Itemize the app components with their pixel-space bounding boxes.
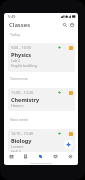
button[interactable]: Search — [62, 22, 68, 28]
staticText: Physics — [11, 51, 32, 58]
staticText: Hall 3 — [11, 149, 21, 152]
button[interactable]: Classes — [33, 152, 48, 161]
button[interactable]: Profile — [69, 22, 75, 28]
staticText: Honors — [11, 103, 24, 108]
staticText: 9:00 – 10:30 — [11, 45, 31, 50]
staticText: Today — [10, 32, 21, 37]
button[interactable]: Profile — [63, 152, 78, 161]
staticText: Classes — [9, 21, 31, 29]
staticText: Engels building — [11, 63, 37, 68]
staticText: Tomorrow — [10, 76, 28, 81]
button[interactable]: 14:10 – 15:40 — [8, 129, 75, 152]
staticText: Biology — [11, 137, 32, 144]
staticText: 11:00 – 12:20 — [11, 90, 34, 95]
staticText: Lab 2 — [11, 58, 21, 63]
button[interactable]: 11:00 – 12:20 — [8, 88, 75, 111]
button[interactable]: Add class — [64, 140, 73, 149]
staticText: Lecture — [11, 144, 24, 149]
button[interactable]: Tasks — [48, 152, 63, 161]
staticText: 5:49 — [8, 14, 16, 19]
staticText: 14:10 – 15:40 — [11, 131, 34, 136]
staticText: Next week — [10, 117, 29, 122]
button[interactable]: Schedule — [18, 152, 33, 161]
button[interactable]: Home — [4, 152, 18, 161]
staticText: Chemistry — [11, 96, 40, 103]
button[interactable]: 9:00 – 10:30 — [8, 43, 75, 72]
